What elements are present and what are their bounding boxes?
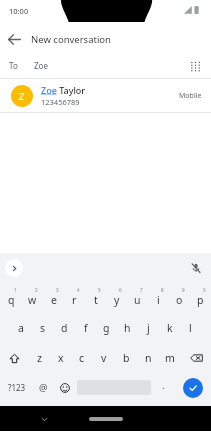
button[interactable]: Hide keyboard: [36, 411, 52, 427]
button[interactable]: j: [138, 313, 159, 343]
staticText: s: [40, 321, 46, 335]
button[interactable]: c: [71, 343, 93, 373]
button[interactable]: Send: [183, 378, 203, 398]
staticText: u: [134, 293, 141, 307]
staticText: z: [37, 351, 42, 365]
button[interactable]: Emoji: [54, 373, 75, 402]
staticText: a: [18, 321, 24, 335]
button[interactable]: 4: [64, 282, 85, 313]
staticText: Z: [19, 90, 25, 102]
staticText: f: [84, 321, 88, 335]
staticText: o: [176, 293, 183, 307]
button[interactable]: d: [54, 313, 75, 343]
staticText: b: [123, 351, 130, 365]
button[interactable]: At sign: [33, 373, 54, 402]
button[interactable]: ?123: [0, 373, 33, 402]
button[interactable]: Back: [0, 25, 28, 53]
staticText: Zoe Taylor: [41, 84, 86, 96]
button[interactable]: v: [93, 343, 115, 373]
button[interactable]: .: [153, 373, 174, 402]
staticText: h: [124, 321, 131, 335]
staticText: 8: [161, 287, 164, 293]
staticText: q: [8, 293, 15, 307]
staticText: m: [165, 351, 175, 365]
button[interactable]: Z: [0, 79, 211, 112]
button[interactable]: 0: [190, 282, 211, 313]
staticText: p: [197, 293, 204, 307]
button[interactable]: 5: [85, 282, 106, 313]
staticText: v: [101, 351, 107, 365]
staticText: New conversation: [31, 33, 111, 46]
staticText: y: [114, 293, 120, 307]
staticText: w: [28, 293, 37, 307]
staticText: 0: [203, 287, 206, 293]
button[interactable]: f: [75, 313, 96, 343]
staticText: Mobile: [179, 91, 202, 101]
button[interactable]: 9: [169, 282, 190, 313]
staticText: 7: [140, 287, 143, 293]
staticText: j: [147, 321, 150, 335]
staticText: k: [167, 321, 173, 335]
button[interactable]: n: [137, 343, 159, 373]
button[interactable]: s: [32, 313, 54, 343]
staticText: 123456789: [41, 97, 80, 107]
button[interactable]: z: [29, 343, 50, 373]
staticText: 5: [98, 287, 101, 293]
button[interactable]: Voice input off: [188, 260, 204, 276]
button[interactable]: Expand toolbar: [5, 259, 23, 277]
button[interactable]: l: [180, 313, 201, 343]
staticText: g: [103, 321, 110, 335]
button[interactable]: m: [159, 343, 181, 373]
button[interactable]: Dialpad: [183, 54, 207, 78]
button[interactable]: 8: [148, 282, 169, 313]
button[interactable]: a: [10, 313, 32, 343]
button[interactable]: 7: [127, 282, 148, 313]
button[interactable]: Home: [89, 417, 123, 421]
button[interactable]: b: [115, 343, 137, 373]
staticText: 6: [119, 287, 122, 293]
staticText: To: [9, 60, 18, 71]
staticText: l: [189, 321, 192, 335]
button[interactable]: 3: [43, 282, 64, 313]
staticText: Zoe: [34, 60, 48, 71]
button[interactable]: 2: [22, 282, 43, 313]
button[interactable]: 1: [0, 282, 22, 313]
staticText: x: [58, 351, 64, 365]
button[interactable]: x: [50, 343, 71, 373]
button[interactable]: g: [96, 313, 117, 343]
staticText: .: [162, 379, 165, 392]
staticText: 4: [77, 287, 80, 293]
button[interactable]: 6: [106, 282, 127, 313]
staticText: @: [39, 381, 48, 394]
staticText: r: [72, 293, 77, 307]
staticText: 1: [14, 287, 17, 293]
staticText: t: [94, 293, 98, 307]
button[interactable]: Backspace: [181, 343, 211, 373]
staticText: c: [79, 351, 85, 365]
staticText: 3: [56, 287, 59, 293]
staticText: n: [145, 351, 152, 365]
staticText: 2: [35, 287, 38, 293]
staticText: 9: [182, 287, 185, 293]
button[interactable]: h: [117, 313, 138, 343]
staticText: i: [157, 293, 160, 307]
staticText: e: [51, 293, 57, 307]
staticText: ?123: [8, 382, 26, 393]
staticText: d: [61, 321, 68, 335]
staticText: 10:00: [9, 6, 29, 16]
button[interactable]: k: [159, 313, 180, 343]
button[interactable]: Shift: [0, 343, 29, 373]
